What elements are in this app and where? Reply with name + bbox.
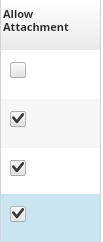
- button[interactable]: Allow Attachment: [0, 0, 100, 50]
- button[interactable]: Checked: [10, 206, 26, 222]
- button[interactable]: Checked: [0, 148, 100, 194]
- button[interactable]: Unchecked: [10, 62, 26, 78]
- button[interactable]: Unchecked: [0, 50, 100, 99]
- button[interactable]: Checked: [10, 111, 26, 127]
- staticText: Allow Attachment: [3, 6, 77, 34]
- button[interactable]: Checked: [0, 99, 100, 148]
- button[interactable]: Checked: [0, 194, 100, 242]
- button[interactable]: Checked: [10, 160, 26, 176]
